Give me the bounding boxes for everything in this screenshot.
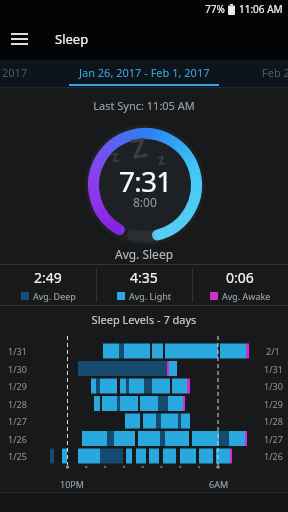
staticText: 2:49	[34, 268, 62, 287]
staticText: 1/26	[8, 433, 27, 445]
staticText: z	[108, 144, 122, 168]
staticText: Sleep	[55, 30, 89, 48]
button[interactable]: Jan 26, 2017 - Feb 1, 2017	[79, 65, 210, 80]
button[interactable]: 2:49	[0, 264, 96, 306]
staticText: 1/31	[8, 345, 27, 357]
staticText: Z	[128, 128, 150, 167]
staticText: 1/28	[8, 398, 27, 410]
staticText: 1/30	[8, 363, 27, 375]
staticText: 8:00	[133, 194, 157, 210]
staticText: 77%	[205, 2, 225, 16]
staticText: 0:06	[226, 268, 254, 287]
staticText: 1/28	[264, 415, 283, 427]
button[interactable]: 4:35	[96, 264, 192, 306]
staticText: Sleep Levels - 7 days	[0, 312, 288, 327]
staticText: 1/26	[264, 450, 283, 462]
staticText: 1/27	[8, 415, 27, 427]
staticText: Last Sync: 11:05 AM	[0, 98, 288, 113]
staticText: Avg. Light	[129, 290, 171, 302]
staticText: Avg. Awake	[222, 290, 271, 302]
staticText: 4:35	[130, 268, 158, 287]
staticText: 1/25	[8, 450, 27, 462]
staticText: 1/29	[8, 380, 27, 392]
button[interactable]	[10, 31, 30, 47]
button[interactable]: Feb 2	[262, 65, 288, 80]
staticText: 1/29	[264, 398, 283, 410]
staticText: Feb 2	[262, 65, 288, 80]
staticText: 2/1	[266, 345, 280, 357]
staticText: z	[154, 147, 168, 171]
button[interactable]: 0:06	[192, 264, 288, 306]
staticText: 1/30	[264, 380, 283, 392]
staticText: Jan 26, 2017 - Feb 1, 2017	[79, 65, 210, 80]
staticText: 1/27	[264, 433, 283, 445]
staticText: 11:06 AM	[239, 2, 283, 16]
button[interactable]: 1/31	[0, 330, 288, 492]
staticText: 7:31	[119, 162, 172, 200]
button[interactable]: 2017	[2, 65, 28, 80]
staticText: Avg. Sleep	[0, 246, 288, 262]
staticText: 2017	[2, 65, 28, 80]
staticText: Avg. Deep	[33, 290, 76, 302]
staticText: 6AM	[209, 478, 229, 490]
staticText: 1/31	[264, 363, 283, 375]
staticText: 10PM	[60, 478, 84, 490]
